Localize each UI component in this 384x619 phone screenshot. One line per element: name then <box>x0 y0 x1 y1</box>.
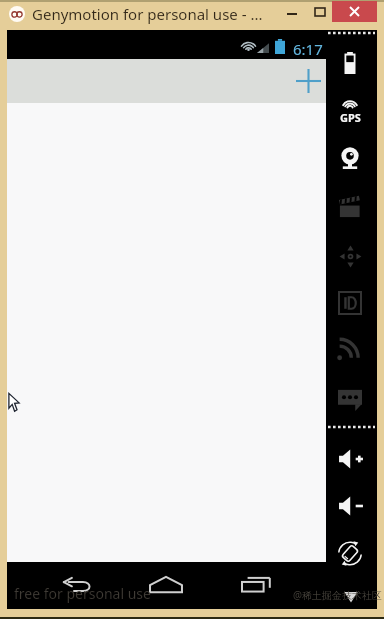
staticText: Genymotion for personal use - ... <box>32 4 263 24</box>
button[interactable]: Identifiers <box>338 291 362 315</box>
button[interactable]: Close <box>332 1 377 22</box>
button[interactable]: Battery <box>339 52 361 74</box>
button[interactable]: GPS <box>337 98 363 124</box>
button[interactable]: Maximize <box>309 3 330 21</box>
staticText: @稀土掘金技术社区 <box>293 588 382 602</box>
button[interactable]: Home <box>143 570 189 598</box>
staticText: free for personal use <box>14 584 151 603</box>
button[interactable]: SMS <box>338 387 362 411</box>
button[interactable]: Collapse toolbar <box>343 590 359 604</box>
button[interactable]: Back <box>54 570 100 598</box>
button[interactable]: Volume up <box>338 447 364 471</box>
staticText: 6:17 <box>293 39 323 59</box>
button[interactable]: Network <box>337 338 359 361</box>
button[interactable]: Volume down <box>338 494 364 518</box>
button[interactable]: Camera <box>338 147 362 173</box>
button[interactable]: Screen record <box>338 195 362 219</box>
button[interactable]: Navigation pad <box>338 244 363 269</box>
button[interactable]: Add <box>289 60 327 102</box>
button[interactable]: Recents <box>233 570 279 598</box>
button[interactable]: Minimize <box>274 3 309 24</box>
button[interactable]: Rotate <box>338 541 362 566</box>
staticText: GPS <box>340 110 361 125</box>
